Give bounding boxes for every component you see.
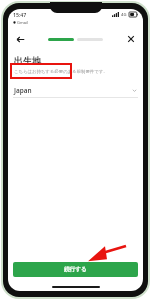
staticText: 出生地 bbox=[14, 55, 41, 66]
staticText: 15:47 bbox=[13, 11, 27, 18]
button[interactable]: Back bbox=[12, 31, 28, 47]
button[interactable]: Close bbox=[123, 31, 139, 47]
staticText: Japan bbox=[14, 86, 32, 95]
button[interactable]: 続行する bbox=[13, 262, 138, 277]
staticText: Gmail bbox=[17, 20, 28, 25]
staticText: 続行する bbox=[64, 266, 87, 273]
staticText: こちらはお持ちする必要のある規制要件です。 bbox=[14, 69, 108, 75]
staticText: 4G bbox=[121, 12, 127, 18]
button[interactable]: Japan bbox=[8, 83, 143, 98]
